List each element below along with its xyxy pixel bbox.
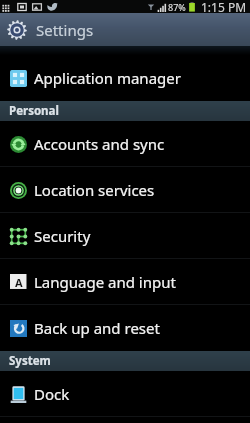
button[interactable]: Back up and reset [0,305,250,351]
staticText: A [15,275,23,290]
staticText: Location services [34,180,155,200]
staticText: Accounts and sync [34,134,165,154]
other: Settings app icon [7,20,27,40]
staticText: Security [34,226,91,246]
button[interactable]: A [0,259,250,305]
staticText: Application manager [34,68,181,88]
button[interactable]: Security [0,213,250,259]
staticText: Language and input [34,272,176,292]
staticText: Dock [34,384,70,404]
staticText: 87% [168,1,186,13]
button[interactable]: Settings app icon [0,13,104,46]
button[interactable]: Location services [0,167,250,213]
staticText: 1:15 PM [201,0,247,12]
button[interactable]: Accounts and sync [0,121,250,167]
staticText: System [9,353,51,369]
staticText: Personal [9,103,59,119]
button[interactable]: Dock [0,371,250,417]
staticText: Back up and reset [34,318,160,338]
staticText: Settings [36,20,94,40]
button[interactable]: Application manager [0,55,250,101]
